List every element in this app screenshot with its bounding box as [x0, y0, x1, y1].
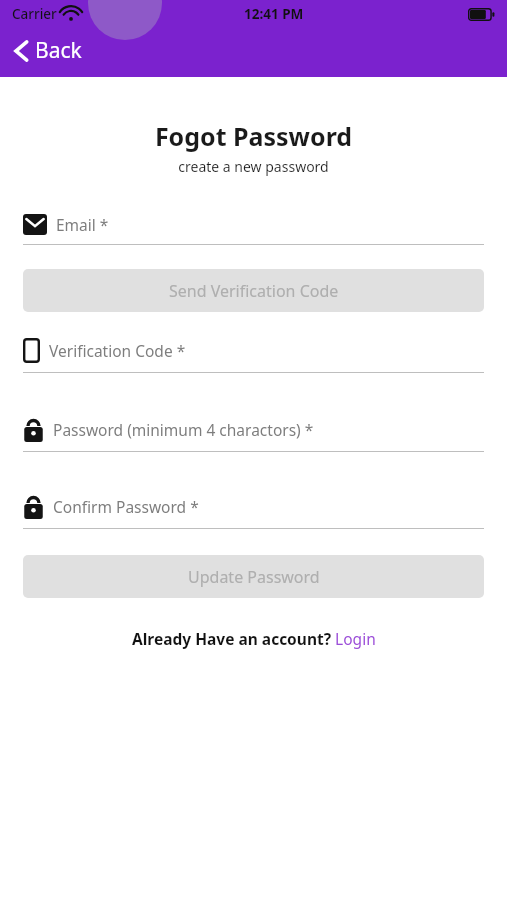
staticText: Password (minimum 4 charactors) *: [53, 419, 314, 440]
button[interactable]: Confirm Password *: [23, 494, 484, 529]
staticText: Fogot Password: [0, 119, 507, 153]
button[interactable]: Already Have an account? Login: [0, 628, 507, 649]
staticText: Confirm Password *: [53, 496, 199, 517]
staticText: create a new password: [0, 157, 507, 176]
staticText: Verification Code *: [49, 340, 186, 361]
button[interactable]: Password (minimum 4 charactors) *: [23, 417, 484, 452]
staticText: Email *: [56, 214, 109, 235]
staticText: Already Have an account? Login: [132, 628, 376, 649]
staticText: Carrier: [12, 5, 57, 23]
button[interactable]: Back: [8, 34, 88, 67]
button[interactable]: Verification Code *: [23, 338, 484, 373]
staticText: Back: [35, 36, 82, 65]
staticText: Update Password: [188, 566, 320, 588]
button[interactable]: Update Password: [23, 555, 484, 598]
staticText: 12:41 PM: [244, 5, 304, 23]
button[interactable]: Email *: [23, 214, 484, 245]
staticText: Send Verification Code: [169, 280, 339, 302]
button[interactable]: Send Verification Code: [23, 269, 484, 312]
